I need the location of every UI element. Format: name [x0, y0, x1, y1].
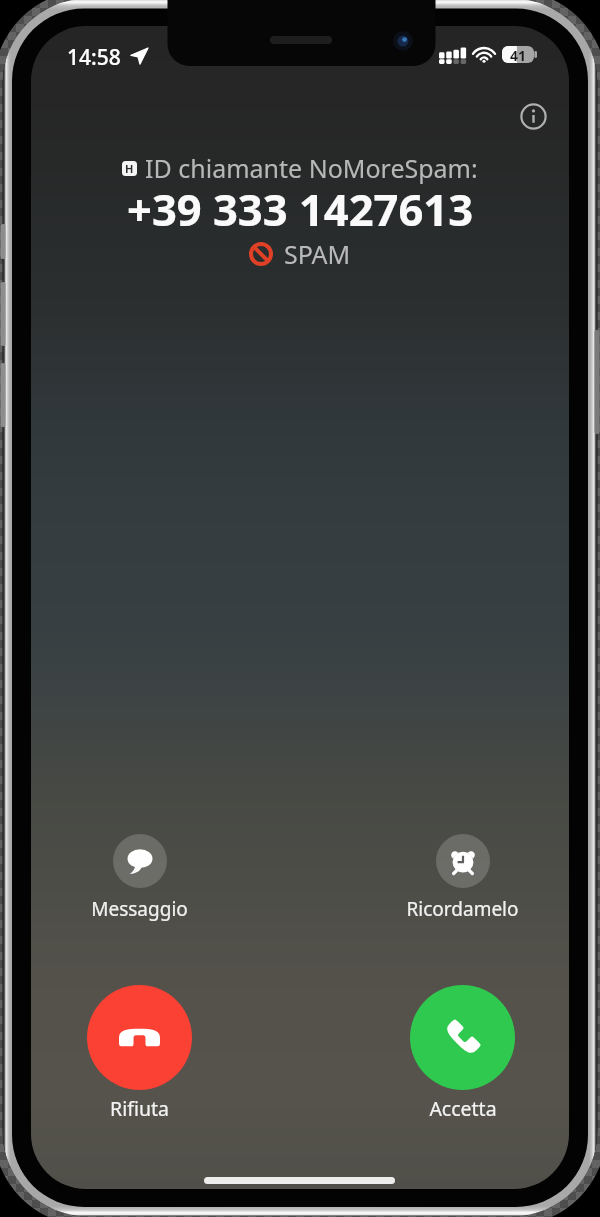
- staticText: ID chiamante NoMoreSpam:: [145, 151, 478, 185]
- other: Accetta: [410, 985, 515, 1090]
- staticText: +39 333 1427613: [127, 179, 474, 238]
- staticText: SPAM: [284, 237, 351, 271]
- staticText: Messaggio: [91, 896, 188, 922]
- staticText: 14:58: [67, 43, 121, 72]
- staticText: Ricordamelo: [406, 896, 519, 922]
- staticText: Accetta: [429, 1095, 497, 1122]
- other: Rifiuta: [87, 985, 192, 1090]
- button[interactable]: Accetta: [377, 985, 547, 1130]
- other: Messaggio: [113, 834, 167, 888]
- other: Ricordamelo: [436, 834, 490, 888]
- button[interactable]: Rifiuta: [54, 985, 224, 1130]
- button[interactable]: Informazioni: [512, 95, 554, 137]
- button[interactable]: Messaggio: [69, 834, 209, 926]
- staticText: Rifiuta: [110, 1095, 169, 1122]
- staticText: H: [125, 161, 134, 176]
- staticText: 41: [510, 46, 527, 63]
- button[interactable]: Ricordamelo: [392, 834, 532, 926]
